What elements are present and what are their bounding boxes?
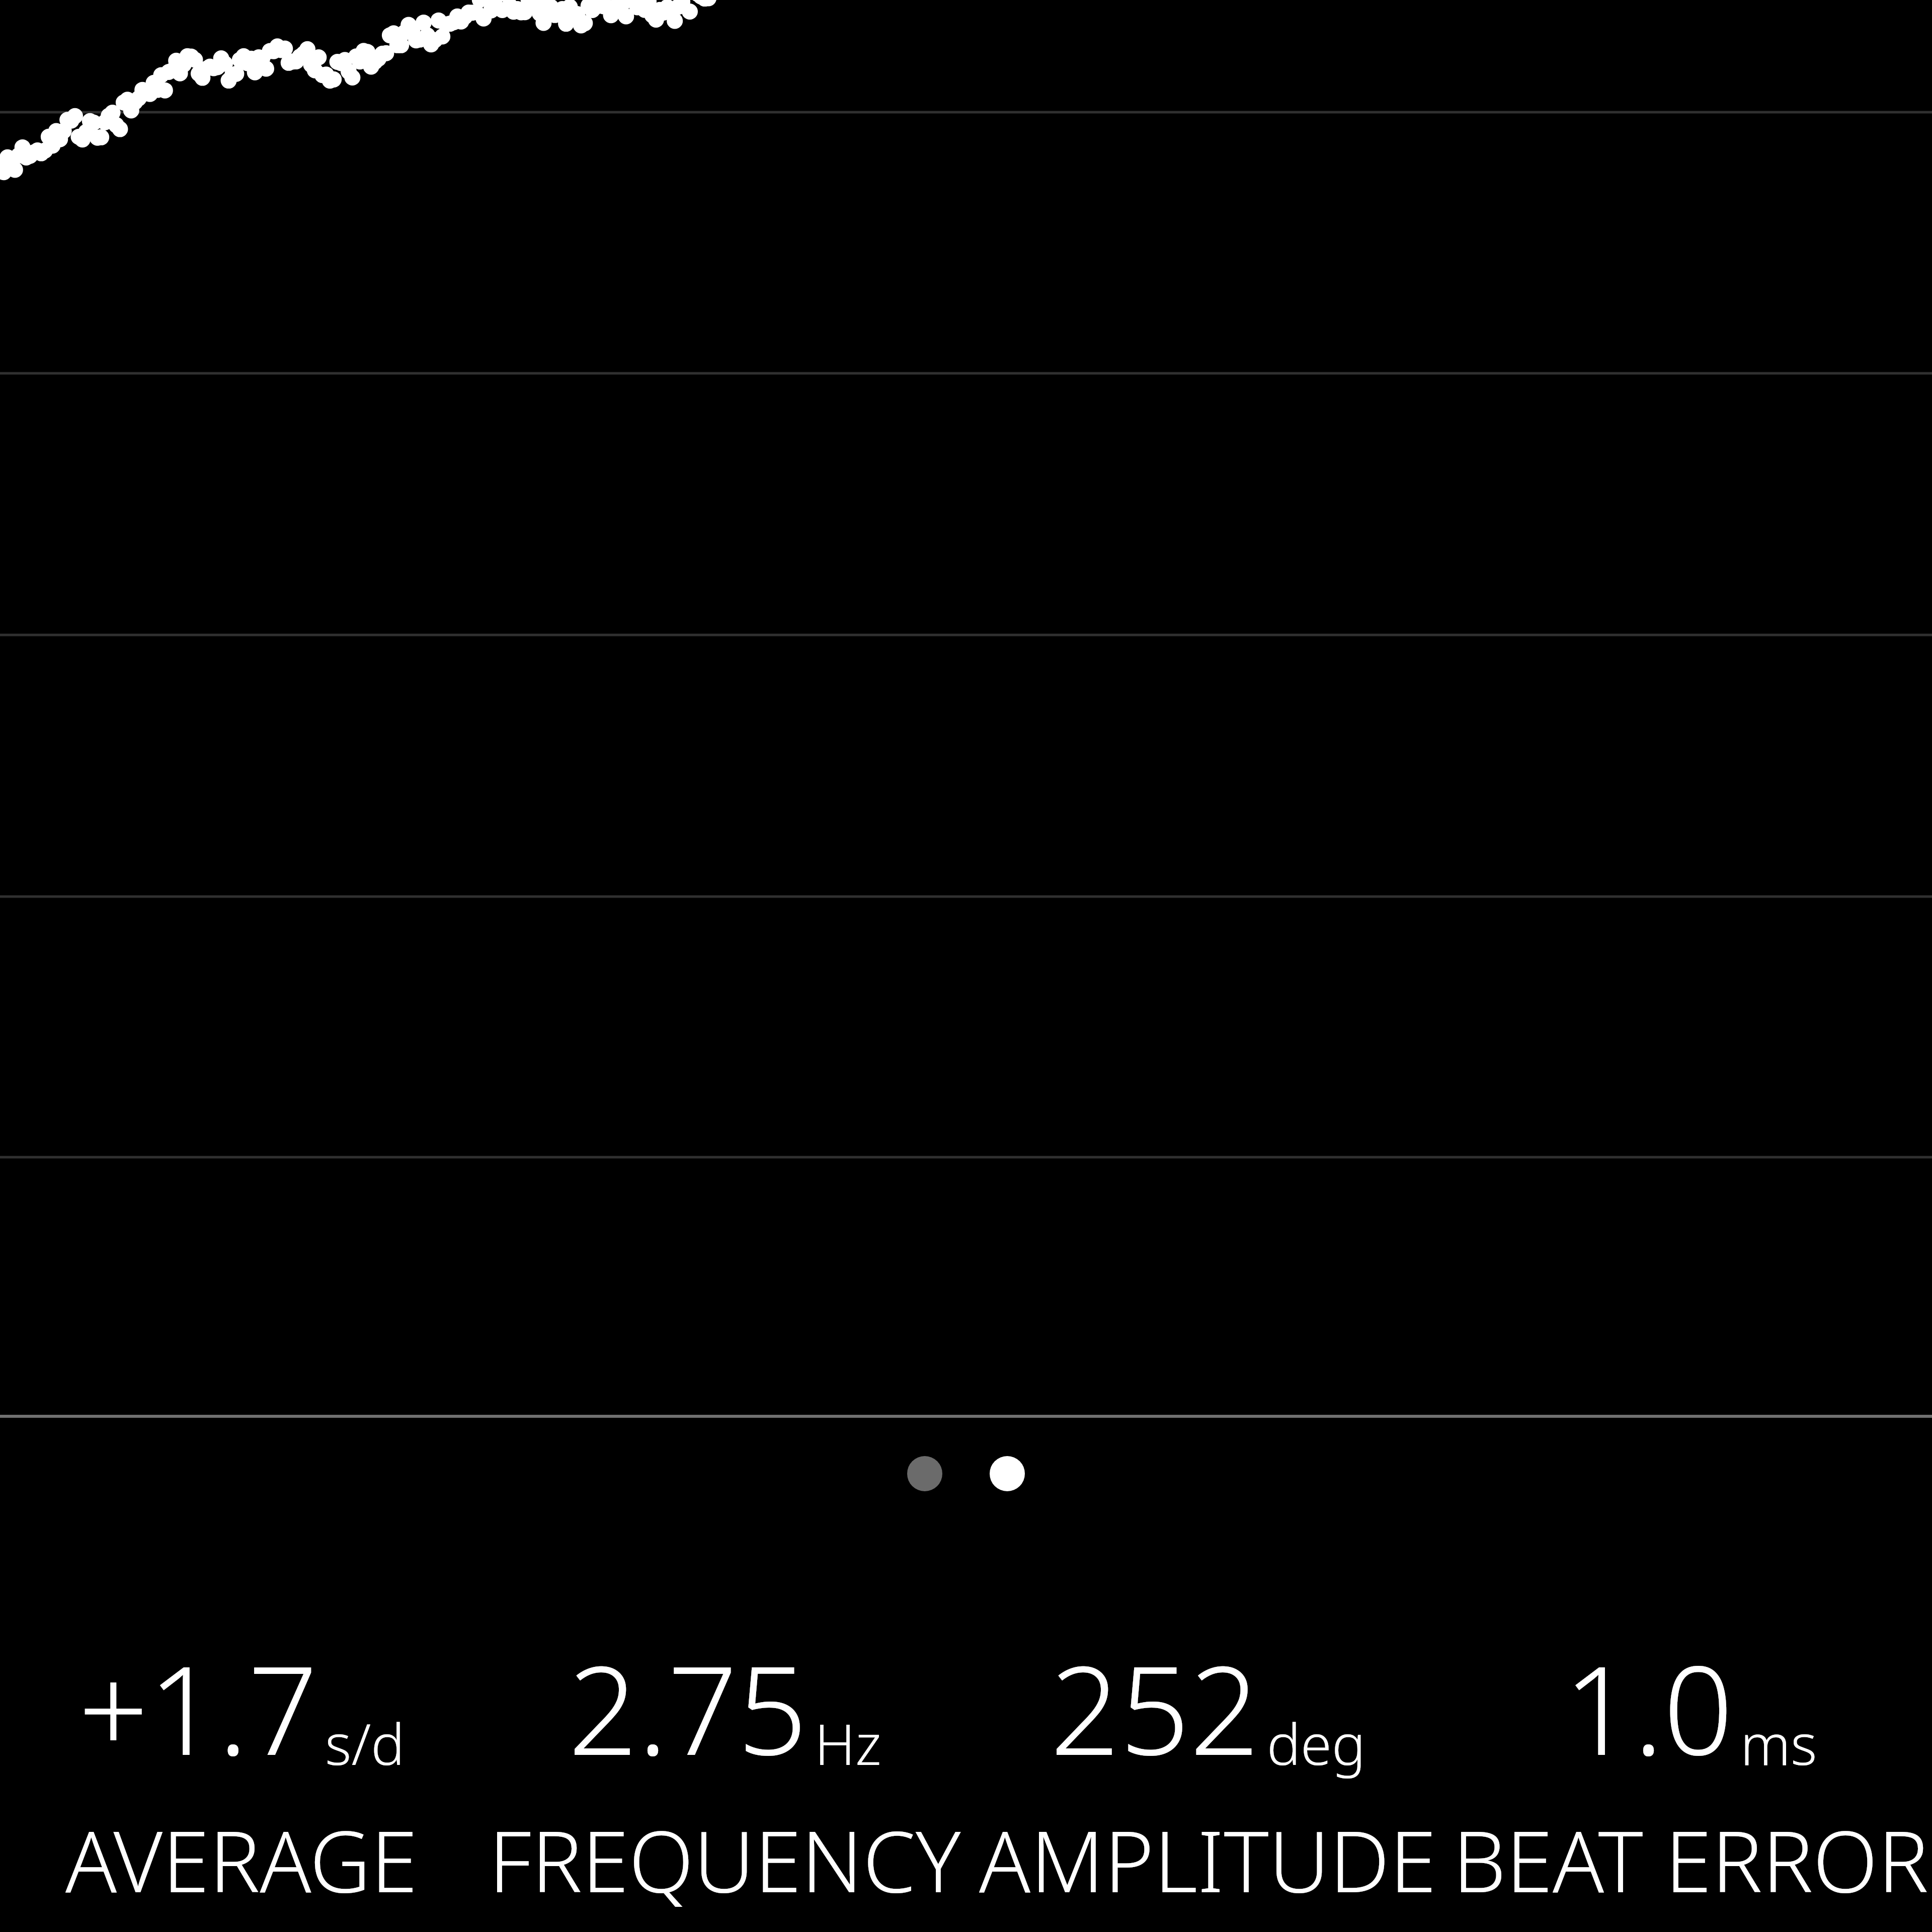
staticText: 2.75 <box>568 1624 808 1791</box>
staticText: deg <box>1267 1705 1365 1782</box>
button[interactable]: 1.0 <box>1449 1624 1932 1917</box>
staticText: AMPLITUDE <box>979 1802 1436 1917</box>
staticText: Hz <box>815 1705 881 1782</box>
staticText: BEAT ERROR <box>1453 1802 1928 1917</box>
button[interactable]: Page 2 <box>990 1456 1025 1491</box>
staticText: 252 <box>1050 1624 1260 1791</box>
button[interactable]: Rate trace graph <box>0 0 1932 1418</box>
button[interactable]: 252 <box>966 1624 1449 1917</box>
staticText: +1.7 <box>78 1624 318 1791</box>
staticText: 1.0 <box>1564 1624 1733 1791</box>
button[interactable]: 2.75 <box>483 1624 966 1917</box>
staticText: FREQUENCY <box>489 1802 961 1917</box>
staticText: AVERAGE <box>65 1802 418 1917</box>
staticText: s/d <box>325 1705 405 1782</box>
button[interactable]: +1.7 <box>0 1624 483 1917</box>
button[interactable]: Page 1 <box>907 1456 942 1491</box>
staticText: ms <box>1740 1705 1817 1782</box>
